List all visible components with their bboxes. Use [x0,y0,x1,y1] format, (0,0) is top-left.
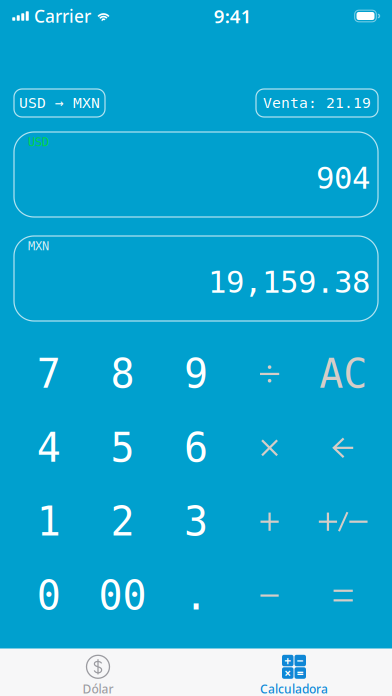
staticText: 904 [316,160,370,196]
staticText: 7 [37,351,61,397]
button[interactable] [233,559,306,632]
staticText: 2 [110,498,134,545]
staticText: + [284,653,291,668]
staticText: . [184,572,208,619]
staticText: Calculadora [260,681,328,696]
button[interactable]: 8 [86,337,159,411]
button[interactable]: + [196,648,392,696]
button[interactable]: MXN [14,236,378,321]
button[interactable] [233,411,306,485]
button[interactable]: 3 [159,485,233,559]
staticText: Carrier [34,4,91,27]
button[interactable]: 0 [12,559,86,632]
button[interactable] [306,559,380,632]
button[interactable]: 6 [159,411,233,485]
button[interactable]: Venta: 21.19 [256,89,378,117]
staticText: 19,159.38 [208,264,370,300]
staticText: AC [319,351,367,397]
staticText: Venta: 21.19 [263,94,371,112]
button[interactable] [233,485,306,559]
button[interactable]: USD → MXN [14,89,105,117]
staticText: USD → MXN [19,94,100,112]
button[interactable]: . [159,559,233,632]
staticText: − [297,653,304,668]
button[interactable]: 2 [86,485,159,559]
button[interactable]: USD [14,132,378,217]
staticText: 1 [37,498,61,545]
staticText: = [297,665,304,681]
button[interactable]: 7 [12,337,86,411]
staticText: 0 [37,572,61,619]
button[interactable]: AC [306,337,380,411]
button[interactable] [233,337,306,411]
staticText: 5 [110,424,134,471]
button[interactable] [306,411,380,485]
staticText: 3 [184,498,208,545]
staticText: Dólar [82,681,113,696]
button[interactable]: 9 [159,337,233,411]
button[interactable]: Dólar [0,648,196,696]
staticText: 6 [184,424,208,471]
staticText: 9 [184,351,208,397]
button[interactable] [306,485,380,559]
staticText: 9:41 [214,4,252,28]
button[interactable]: 5 [86,411,159,485]
staticText: 4 [37,424,61,471]
staticText: 00 [98,572,146,619]
staticText: MXN [28,239,49,253]
button[interactable]: 00 [86,559,159,632]
staticText: 8 [110,351,134,397]
button[interactable]: 4 [12,411,86,485]
button[interactable]: 1 [12,485,86,559]
staticText: USD [28,135,49,149]
staticText: × [284,665,291,681]
